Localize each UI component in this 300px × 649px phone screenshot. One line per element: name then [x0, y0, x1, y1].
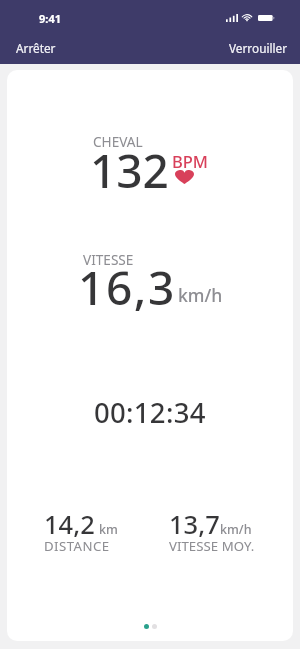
staticText: 00:12:34: [94, 394, 206, 431]
staticText: 9:41: [39, 11, 61, 26]
staticText: DISTANCE: [44, 537, 110, 555]
staticText: km/h: [220, 521, 252, 538]
button[interactable]: Page 1: [144, 624, 149, 629]
staticText: 14,2: [44, 507, 95, 542]
staticText: BPM: [172, 150, 209, 172]
button[interactable]: Arrêter: [0, 36, 70, 61]
staticText: km/h: [178, 283, 223, 307]
staticText: VITESSE MOY.: [169, 537, 255, 555]
staticText: 16,3: [78, 256, 176, 319]
staticText: 13,7: [169, 507, 220, 542]
staticText: Arrêter: [16, 40, 56, 56]
staticText: km: [99, 521, 118, 538]
button[interactable]: Page 2: [152, 624, 157, 629]
staticText: Verrouiller: [229, 40, 288, 56]
button[interactable]: Verrouiller: [215, 36, 300, 61]
staticText: CHEVAL: [93, 132, 143, 151]
staticText: 132: [90, 139, 169, 202]
staticText: VITESSE: [83, 250, 134, 269]
